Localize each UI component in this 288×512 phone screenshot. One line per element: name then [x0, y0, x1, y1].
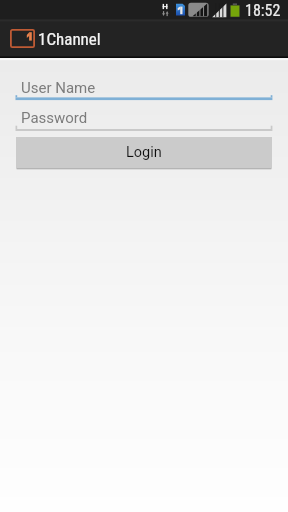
button[interactable]: Login	[16, 137, 272, 168]
button[interactable]: 1Channel	[0, 20, 288, 57]
button[interactable]: Password	[21, 109, 88, 127]
other: 1Channel	[10, 29, 35, 48]
button[interactable]: User Name	[21, 79, 96, 97]
staticText: Login	[126, 144, 162, 161]
staticText: 1Channel	[38, 29, 101, 49]
staticText: 18:52	[245, 1, 281, 20]
